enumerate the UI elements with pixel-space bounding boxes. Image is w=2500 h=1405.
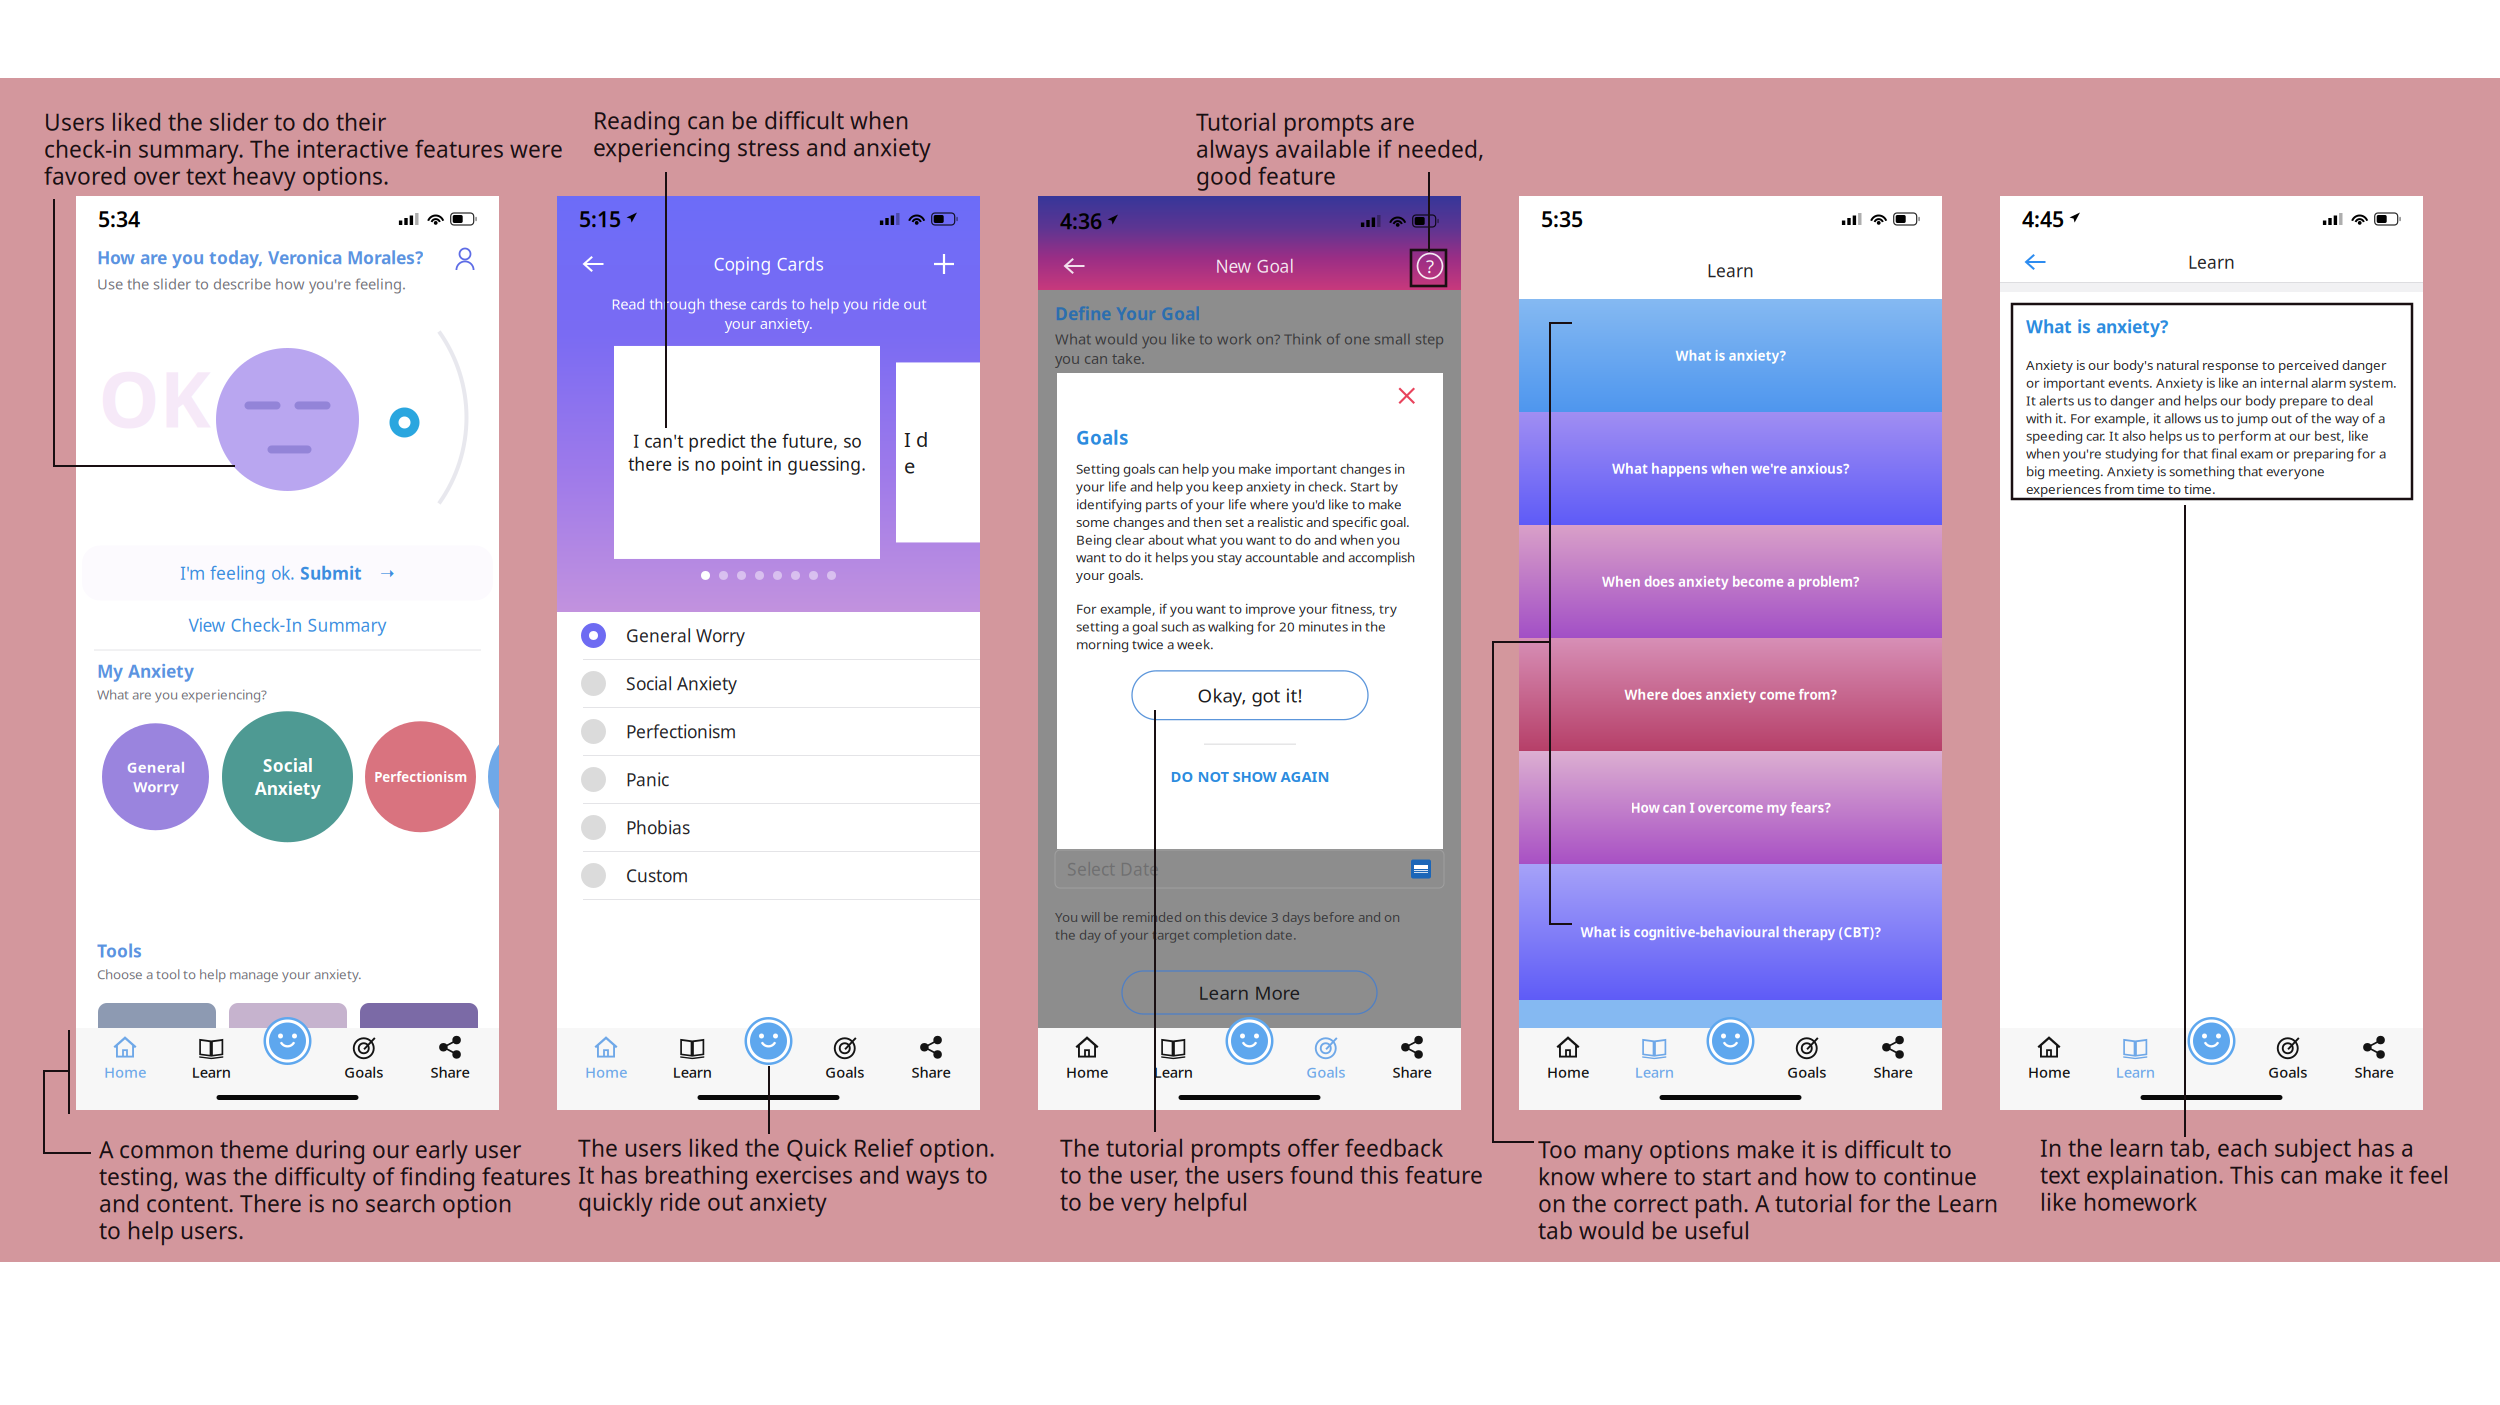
staticText: to be very helpful — [1060, 1187, 1248, 1217]
staticText: Home — [104, 1062, 146, 1082]
button[interactable]: Quick Relief — [744, 1017, 792, 1065]
staticText: For example, if you want to improve your… — [1076, 600, 1397, 653]
staticText: Home — [1066, 1062, 1108, 1082]
button[interactable]: Perfectionism — [557, 708, 980, 756]
staticText: 5:34 — [98, 205, 140, 233]
staticText: Share — [1392, 1062, 1431, 1082]
button[interactable]: Quick Relief — [1225, 1017, 1273, 1065]
button[interactable]: Back — [2013, 243, 2057, 281]
button[interactable]: Okay, got it! — [1076, 671, 1424, 720]
staticText: 4:36 — [1060, 207, 1102, 235]
button[interactable]: I'm feeling ok. — [76, 545, 499, 600]
staticText: Coping Cards — [713, 252, 823, 275]
button[interactable]: Goals — [810, 1035, 880, 1081]
staticText: Goals — [1306, 1062, 1345, 1082]
button[interactable]: Help — [1413, 249, 1447, 283]
button[interactable]: Learn — [657, 1035, 727, 1081]
button[interactable]: When does anxiety become a problem? — [1519, 525, 1942, 638]
button[interactable]: Learn — [2100, 1035, 2170, 1081]
staticText: testing, was the difficulty of finding f… — [99, 1161, 571, 1191]
staticText: 5:15 — [579, 205, 621, 233]
staticText: to help users. — [99, 1215, 244, 1245]
button[interactable]: How can I overcome my fears? — [1519, 751, 1942, 864]
button[interactable]: Phobias — [557, 804, 980, 852]
button[interactable]: Home — [1533, 1035, 1603, 1081]
staticText: I can't predict the future, so there is … — [628, 429, 866, 475]
button[interactable]: Panic — [557, 756, 980, 804]
staticText: Submit — [300, 561, 362, 584]
staticText: Goals — [1076, 425, 1128, 450]
button[interactable]: Home — [571, 1035, 641, 1081]
button[interactable]: Share — [1858, 1035, 1928, 1081]
button[interactable]: General Worry — [102, 723, 209, 830]
button[interactable]: Share — [2339, 1035, 2409, 1081]
button[interactable]: Goals — [1291, 1035, 1361, 1081]
button[interactable]: Where does anxiety come from? — [1519, 638, 1942, 751]
staticText: Anxiety is our body's natural response t… — [2026, 356, 2397, 498]
staticText: on the correct path. A tutorial for the … — [1538, 1188, 1998, 1218]
button[interactable]: What is anxiety? — [1519, 299, 1942, 412]
staticText: Goals — [825, 1062, 864, 1082]
button[interactable]: Quick Relief — [2187, 1017, 2235, 1065]
button[interactable]: Quick Relief — [1706, 1017, 1754, 1065]
staticText: What is anxiety? — [2026, 315, 2168, 338]
staticText: Share — [1873, 1062, 1912, 1082]
button[interactable]: Back — [1052, 247, 1096, 285]
button[interactable]: Perfectionism — [365, 721, 476, 832]
button[interactable]: Close — [1390, 381, 1424, 411]
button[interactable]: Add card — [922, 245, 966, 283]
button[interactable]: Back — [571, 245, 615, 283]
button[interactable]: Learn — [176, 1035, 246, 1081]
button[interactable]: Learn — [1138, 1035, 1208, 1081]
button[interactable]: Goals — [2253, 1035, 2323, 1081]
staticText: I d e — [904, 426, 928, 479]
button[interactable]: What happens when we're anxious? — [1519, 412, 1942, 525]
button[interactable]: Profile — [452, 246, 478, 276]
staticText: Share — [430, 1062, 469, 1082]
staticText: Home — [585, 1062, 627, 1082]
button[interactable]: View Check-In Summary — [76, 600, 499, 649]
button[interactable]: Share — [1377, 1035, 1447, 1081]
staticText: Use the slider to describe how you're fe… — [97, 274, 406, 293]
staticText: When does anxiety become a problem? — [1602, 573, 1859, 590]
button[interactable]: Goals — [1772, 1035, 1842, 1081]
button[interactable]: Share — [896, 1035, 966, 1081]
staticText: check-in summary. The interactive featur… — [44, 134, 563, 164]
staticText: Learn — [673, 1062, 712, 1082]
staticText: Choose a tool to help manage your anxiet… — [97, 965, 362, 983]
button[interactable]: What is cognitive-behavioural therapy (C… — [1519, 864, 1942, 1000]
staticText: Social Anxiety — [254, 754, 320, 800]
button[interactable]: Share — [415, 1035, 485, 1081]
button[interactable]: Home — [90, 1035, 160, 1081]
button[interactable]: Home — [1052, 1035, 1122, 1081]
staticText: Users liked the slider to do their — [44, 107, 386, 137]
staticText: What are you experiencing? — [97, 685, 267, 703]
staticText: Home — [1547, 1062, 1589, 1082]
staticText: Learn — [1635, 1062, 1674, 1082]
button[interactable]: Quick Relief — [263, 1017, 311, 1065]
staticText: Learn — [2116, 1062, 2155, 1082]
staticText: Reading can be difficult when — [593, 105, 909, 135]
staticText: OK — [98, 346, 210, 449]
button[interactable]: General Worry — [557, 612, 980, 660]
button[interactable]: Learn More — [1122, 971, 1377, 1014]
staticText: like homework — [2040, 1187, 2197, 1217]
staticText: Perfectionism — [626, 720, 736, 743]
button[interactable]: Goals — [329, 1035, 399, 1081]
staticText: The users liked the Quick Relief option. — [578, 1133, 995, 1163]
button[interactable]: Learn — [1619, 1035, 1689, 1081]
staticText: I'm feeling ok. — [180, 561, 300, 584]
staticText: Panic — [626, 768, 669, 791]
staticText: Social Anxiety — [626, 672, 737, 695]
staticText: tab would be useful — [1538, 1215, 1750, 1245]
button[interactable]: Custom — [557, 852, 980, 900]
button[interactable]: Home — [2014, 1035, 2084, 1081]
button[interactable]: DO NOT SHOW AGAIN — [1076, 757, 1424, 796]
button[interactable]: Social Anxiety — [557, 660, 980, 708]
staticText: quickly ride out anxiety — [578, 1187, 827, 1217]
button[interactable]: Social Anxiety — [222, 711, 353, 842]
staticText: In the learn tab, each subject has a — [2040, 1133, 2414, 1163]
staticText: Define Your Goal — [1055, 302, 1200, 325]
staticText: Goals — [2268, 1062, 2307, 1082]
staticText: What is cognitive-behavioural therapy (C… — [1580, 923, 1880, 941]
